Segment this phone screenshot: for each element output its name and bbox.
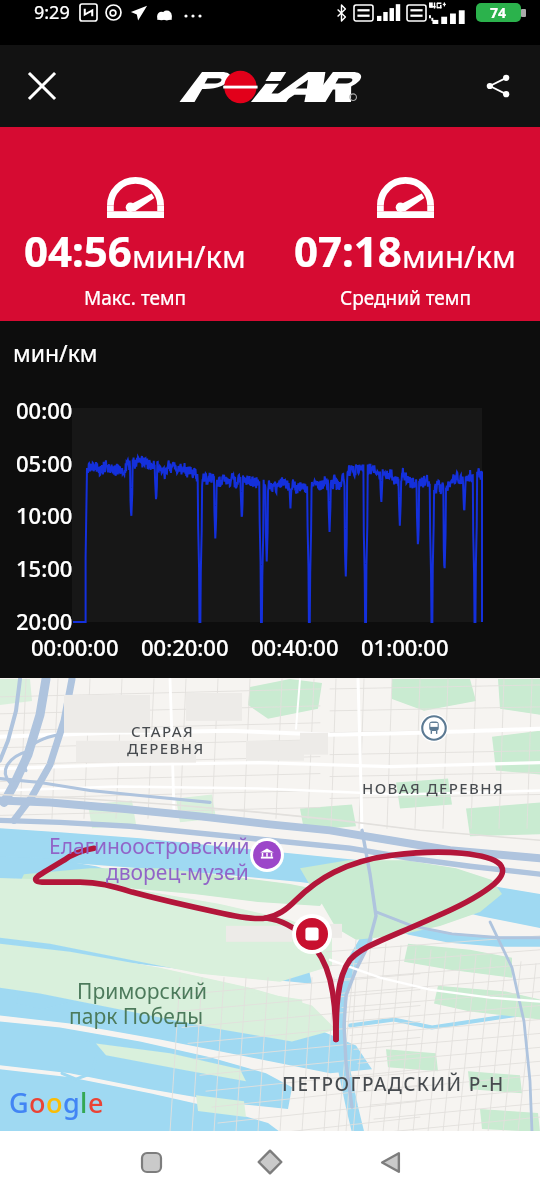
button[interactable]: Finish [292,914,332,954]
staticText: 00:20:00 [141,632,229,662]
staticText: 00:40:00 [251,632,339,662]
button[interactable]: Museum [250,838,284,872]
staticText: 00:00 [16,395,73,425]
staticText: СТАРАЯ [131,721,195,741]
staticText: 00:00:00 [31,632,119,662]
staticText: 74 [490,3,507,22]
staticText: 07:18 [294,222,402,279]
button[interactable]: Recent apps [127,1138,175,1186]
staticText: НОВАЯ ДЕРЕВНЯ [362,778,505,798]
staticText: Макс. темп [84,285,187,311]
staticText: мин/км [132,235,246,277]
staticText: 01:00:00 [361,632,449,662]
staticText: ДЕРЕВНЯ [127,738,205,758]
staticText: дворец-музей [106,858,249,887]
button[interactable]: Back [366,1138,414,1186]
staticText: Приморский [77,977,208,1006]
button[interactable]: Home [246,1138,294,1186]
button[interactable]: Train station [420,714,448,742]
button[interactable]: 04:56 [0,127,270,311]
staticText: G [9,1084,29,1121]
staticText: парк Победы [69,1002,204,1031]
staticText: o [29,1084,46,1121]
staticText: g [63,1084,80,1121]
button[interactable]: 07:18 [270,127,540,311]
staticText: мин/км [402,235,516,277]
staticText: e [88,1084,104,1121]
staticText: ПЕТРОГРАДСКИЙ Р-Н [282,1071,505,1097]
staticText: 05:00 [16,448,73,478]
button[interactable]: Close [14,58,70,114]
staticText: 15:00 [16,553,73,583]
staticText: Елагиноостровский [49,832,250,861]
staticText: 04:56 [24,222,132,279]
staticText: 10:00 [16,500,73,530]
staticText: o [46,1084,63,1121]
button[interactable]: Share [470,58,526,114]
staticText: 20:00 [16,606,73,636]
staticText: Средний темп [340,285,471,311]
staticText: 9:29 [34,0,70,25]
staticText: мин/км [13,337,98,368]
staticText: l [80,1084,88,1121]
